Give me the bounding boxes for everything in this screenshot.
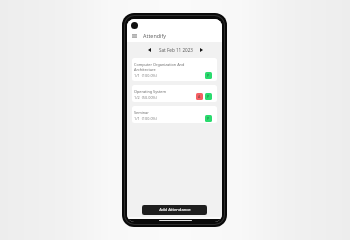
staticText: Operating System — [134, 89, 166, 94]
staticText: P — [207, 94, 210, 99]
button[interactable]: Open navigation menu — [130, 31, 139, 40]
staticText: 1/1 (100.0%) — [134, 116, 157, 121]
button[interactable]: Previous day — [145, 46, 153, 54]
button[interactable]: Seminar — [132, 106, 217, 123]
staticText: P — [207, 73, 210, 78]
staticText: Computer Organization And Architecture — [134, 62, 185, 72]
button[interactable]: P — [205, 72, 212, 79]
staticText: Add Attendance — [159, 207, 191, 213]
staticText: Seminar — [134, 110, 149, 115]
button[interactable]: P — [205, 115, 212, 122]
button[interactable]: Operating System — [132, 85, 217, 102]
staticText: P — [207, 116, 210, 121]
button[interactable]: Computer Organization And Architecture — [132, 58, 217, 81]
staticText: A — [198, 94, 201, 99]
button[interactable]: Next day — [197, 46, 205, 54]
button[interactable]: A — [196, 93, 203, 100]
button[interactable]: Add Attendance — [142, 205, 207, 215]
staticText: 1/1 (100.0%) — [134, 73, 157, 78]
staticText: 1/2 (50.00%) — [134, 95, 157, 100]
staticText: Attendify — [143, 32, 167, 39]
staticText: Sat Feb 11 2023 — [159, 47, 193, 53]
button[interactable]: P — [205, 93, 212, 100]
